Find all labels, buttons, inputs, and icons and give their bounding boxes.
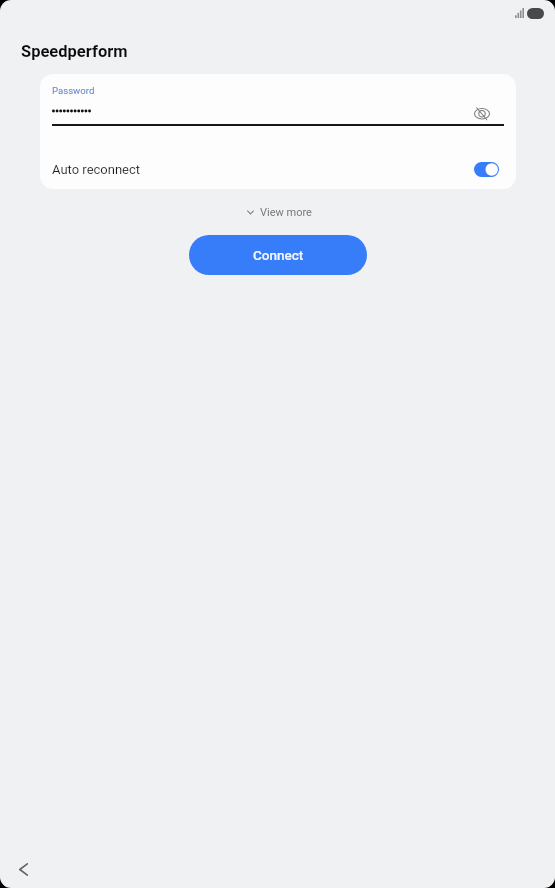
staticText: Auto reconnect — [52, 162, 141, 177]
staticText: Connect — [253, 247, 304, 263]
button[interactable]: View more — [239, 202, 316, 223]
button[interactable]: Password — [40, 74, 516, 150]
staticText: Speedperform — [21, 42, 128, 61]
staticText: Password — [52, 85, 95, 96]
button[interactable]: Connect — [189, 235, 367, 275]
button[interactable]: Show password — [472, 106, 492, 120]
button[interactable]: Auto reconnect toggle — [474, 162, 499, 177]
staticText: View more — [260, 206, 312, 219]
button[interactable]: Back — [8, 854, 39, 885]
button[interactable]: Auto reconnect — [40, 150, 516, 189]
